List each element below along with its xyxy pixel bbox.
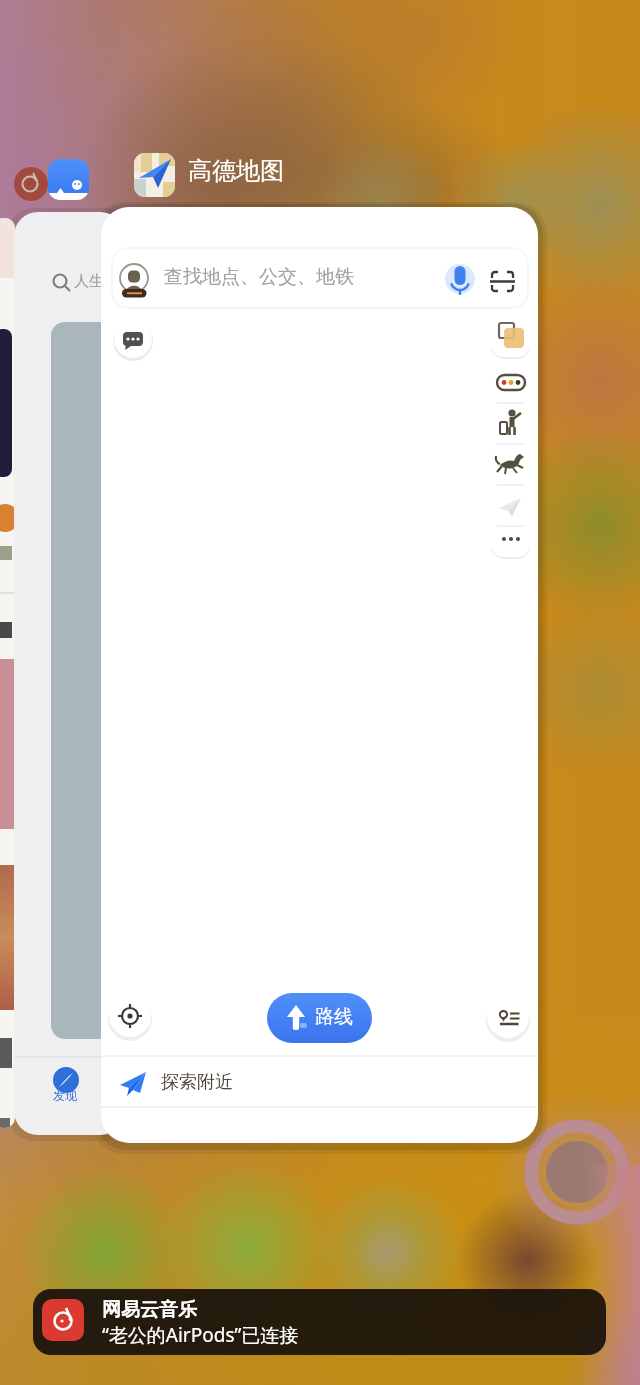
staticText: “老公的AirPods”已连接 — [102, 1322, 299, 1348]
button[interactable]: 路线 — [267, 993, 372, 1043]
staticText: 探索附近 — [161, 1071, 233, 1094]
staticText: 网易云音乐 — [102, 1298, 197, 1322]
staticText: 路线 — [315, 1005, 353, 1029]
button[interactable] — [491, 310, 530, 357]
staticText: 高德地图 — [188, 156, 284, 186]
button[interactable] — [486, 989, 528, 1031]
button[interactable] — [483, 261, 523, 301]
staticText: 人生 — [74, 272, 104, 291]
button[interactable] — [48, 159, 89, 200]
button[interactable] — [114, 320, 152, 358]
staticText: 查找地点、公交、地铁 — [164, 265, 354, 289]
button[interactable] — [111, 997, 149, 1035]
button[interactable] — [441, 261, 481, 301]
button[interactable]: 探索附近 — [101, 1057, 538, 1107]
button[interactable] — [134, 153, 175, 197]
button[interactable]: 网易云音乐 — [33, 1289, 606, 1355]
button[interactable] — [491, 364, 530, 557]
staticText: 发现 — [53, 1088, 77, 1103]
button[interactable]: 查找地点、公交、地铁 — [112, 248, 528, 308]
